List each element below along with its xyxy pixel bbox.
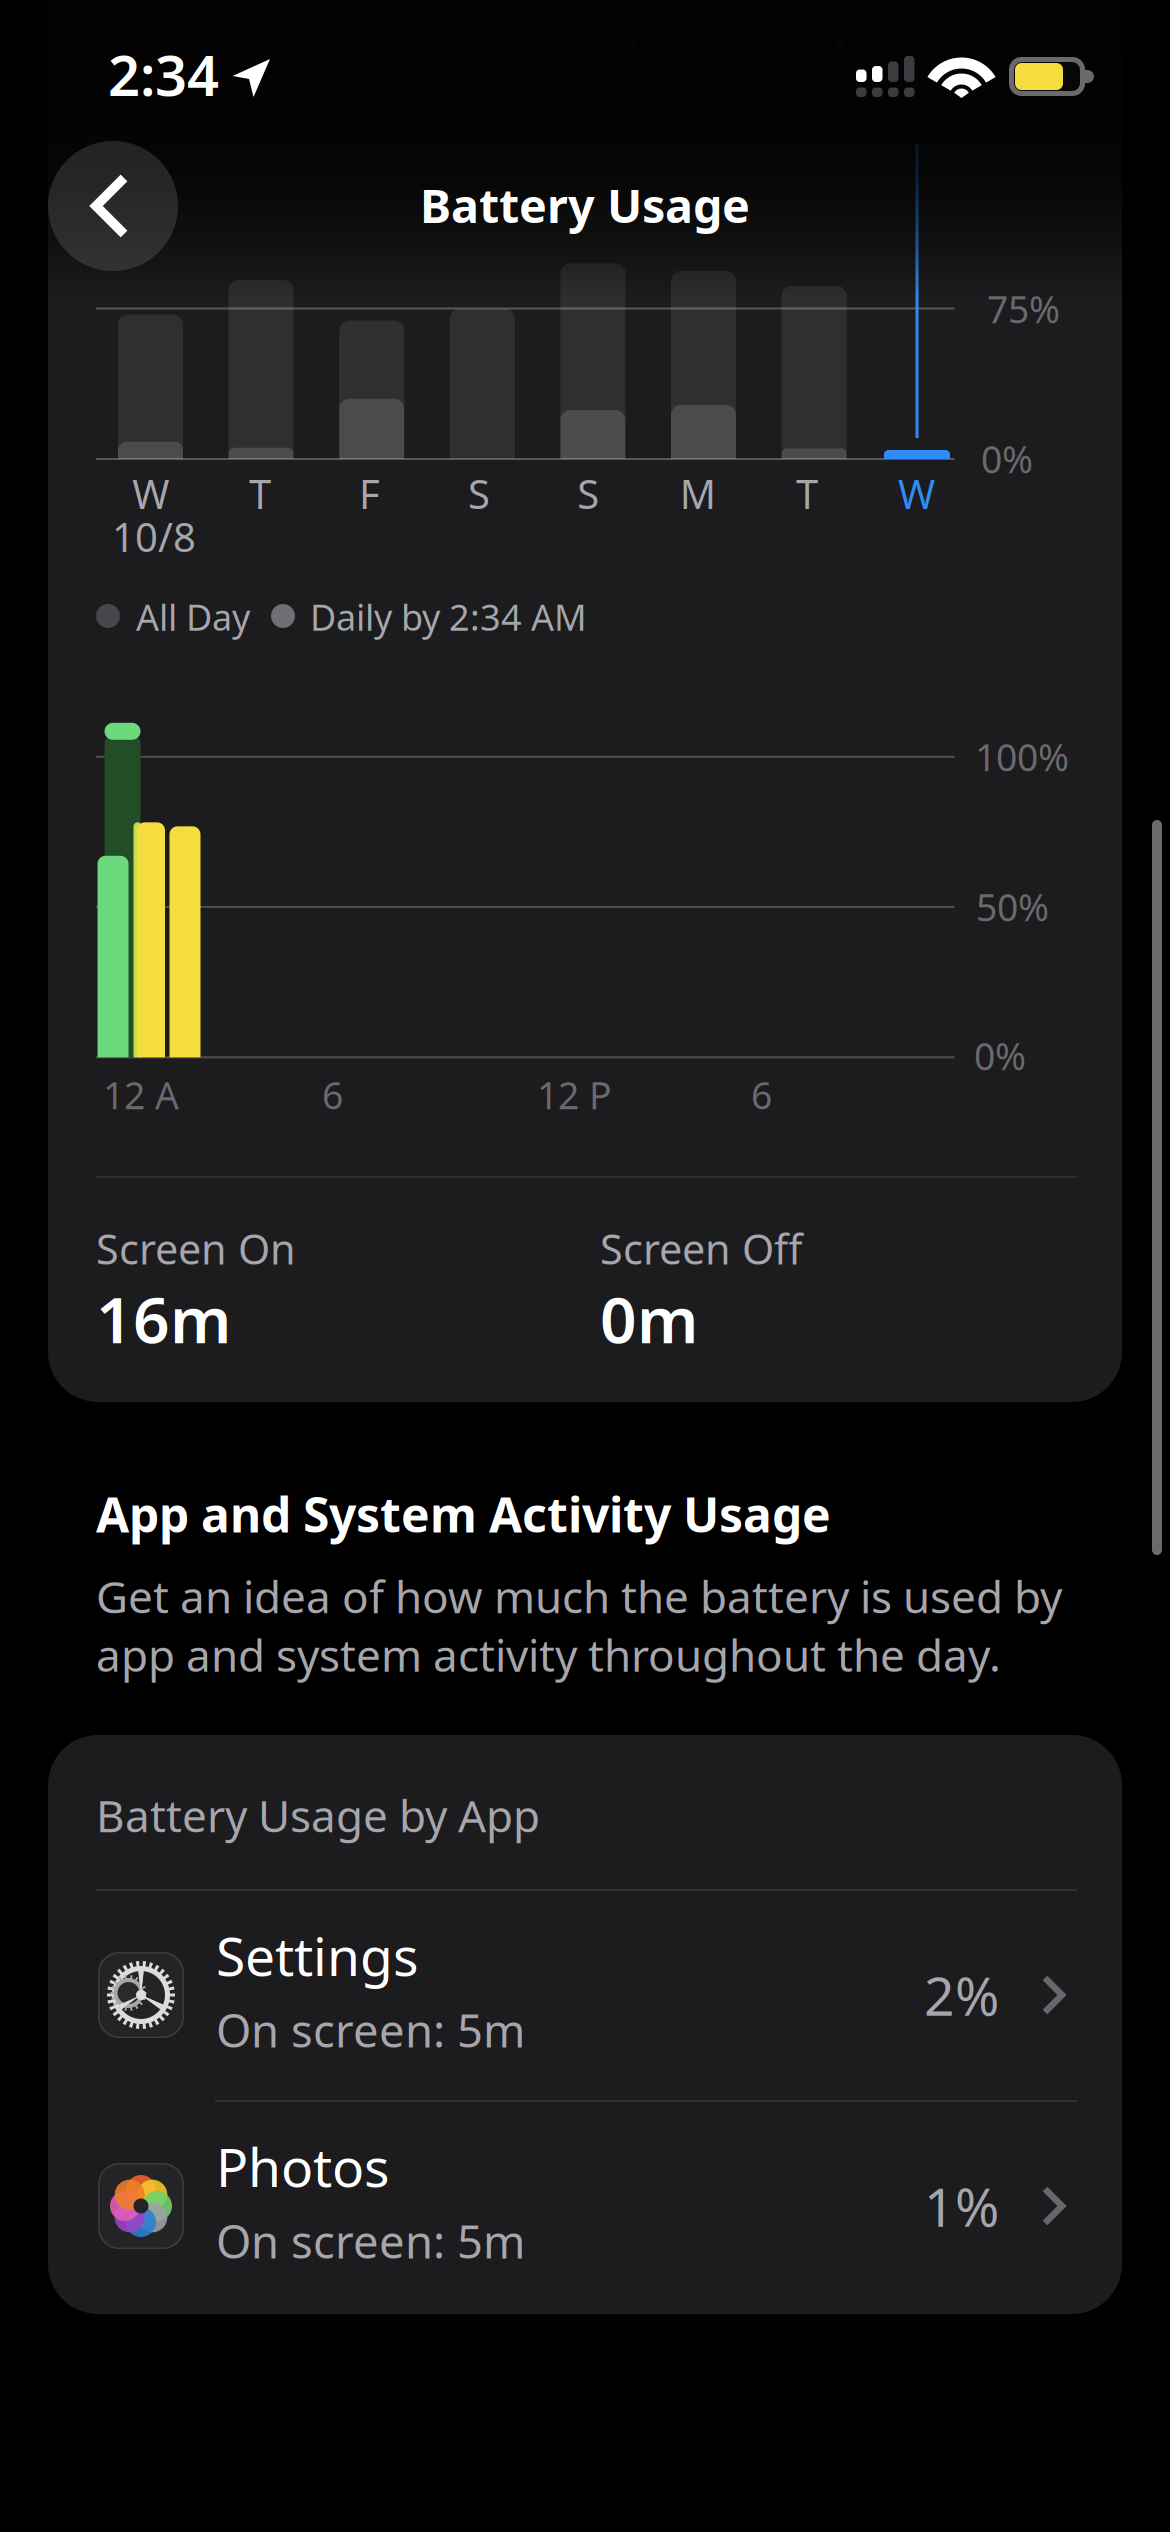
- staticText: Get an idea of how much the battery is u…: [96, 1567, 1062, 1684]
- staticText: 50%: [976, 882, 1049, 932]
- staticText: 0%: [974, 1031, 1026, 1081]
- staticText: 75%: [987, 284, 1060, 334]
- staticText: T: [249, 467, 271, 520]
- staticText: App and System Activity Usage: [96, 1482, 831, 1546]
- staticText: S: [468, 467, 490, 520]
- staticText: On screen: 5m: [216, 2000, 525, 2060]
- staticText: 100%: [975, 732, 1069, 782]
- staticText: Screen Off: [600, 1221, 802, 1276]
- staticText: Settings: [216, 1920, 419, 1991]
- staticText: Screen On: [96, 1221, 296, 1276]
- staticText: 6: [751, 1070, 772, 1120]
- staticText: Battery Usage by App: [96, 1786, 540, 1844]
- button[interactable]: Settings: [48, 1890, 1122, 2100]
- staticText: M: [680, 467, 716, 520]
- staticText: Battery Usage: [420, 174, 750, 236]
- button[interactable]: Back: [48, 141, 178, 271]
- staticText: 0%: [981, 434, 1033, 484]
- staticText: T: [796, 467, 818, 520]
- staticText: All Day: [136, 593, 250, 641]
- staticText: W: [898, 467, 935, 520]
- staticText: On screen: 5m: [216, 2211, 525, 2271]
- staticText: 2%: [924, 1960, 999, 2030]
- staticText: 12 A: [103, 1070, 179, 1120]
- staticText: Photos: [216, 2131, 390, 2202]
- staticText: 2:34: [108, 37, 219, 111]
- staticText: Daily by 2:34 AM: [310, 593, 587, 641]
- staticText: Oct 16, 2025: [595, 8, 930, 82]
- staticText: W: [132, 467, 169, 520]
- staticText: 1%: [924, 2171, 999, 2241]
- staticText: 12 P: [537, 1070, 612, 1120]
- staticText: S: [577, 467, 599, 520]
- staticText: 0m: [600, 1276, 698, 1361]
- staticText: F: [359, 467, 380, 520]
- staticText: 16m: [96, 1276, 231, 1361]
- staticText: 10/8: [112, 510, 196, 563]
- staticText: 6: [322, 1070, 343, 1120]
- button[interactable]: Photos: [48, 2101, 1122, 2311]
